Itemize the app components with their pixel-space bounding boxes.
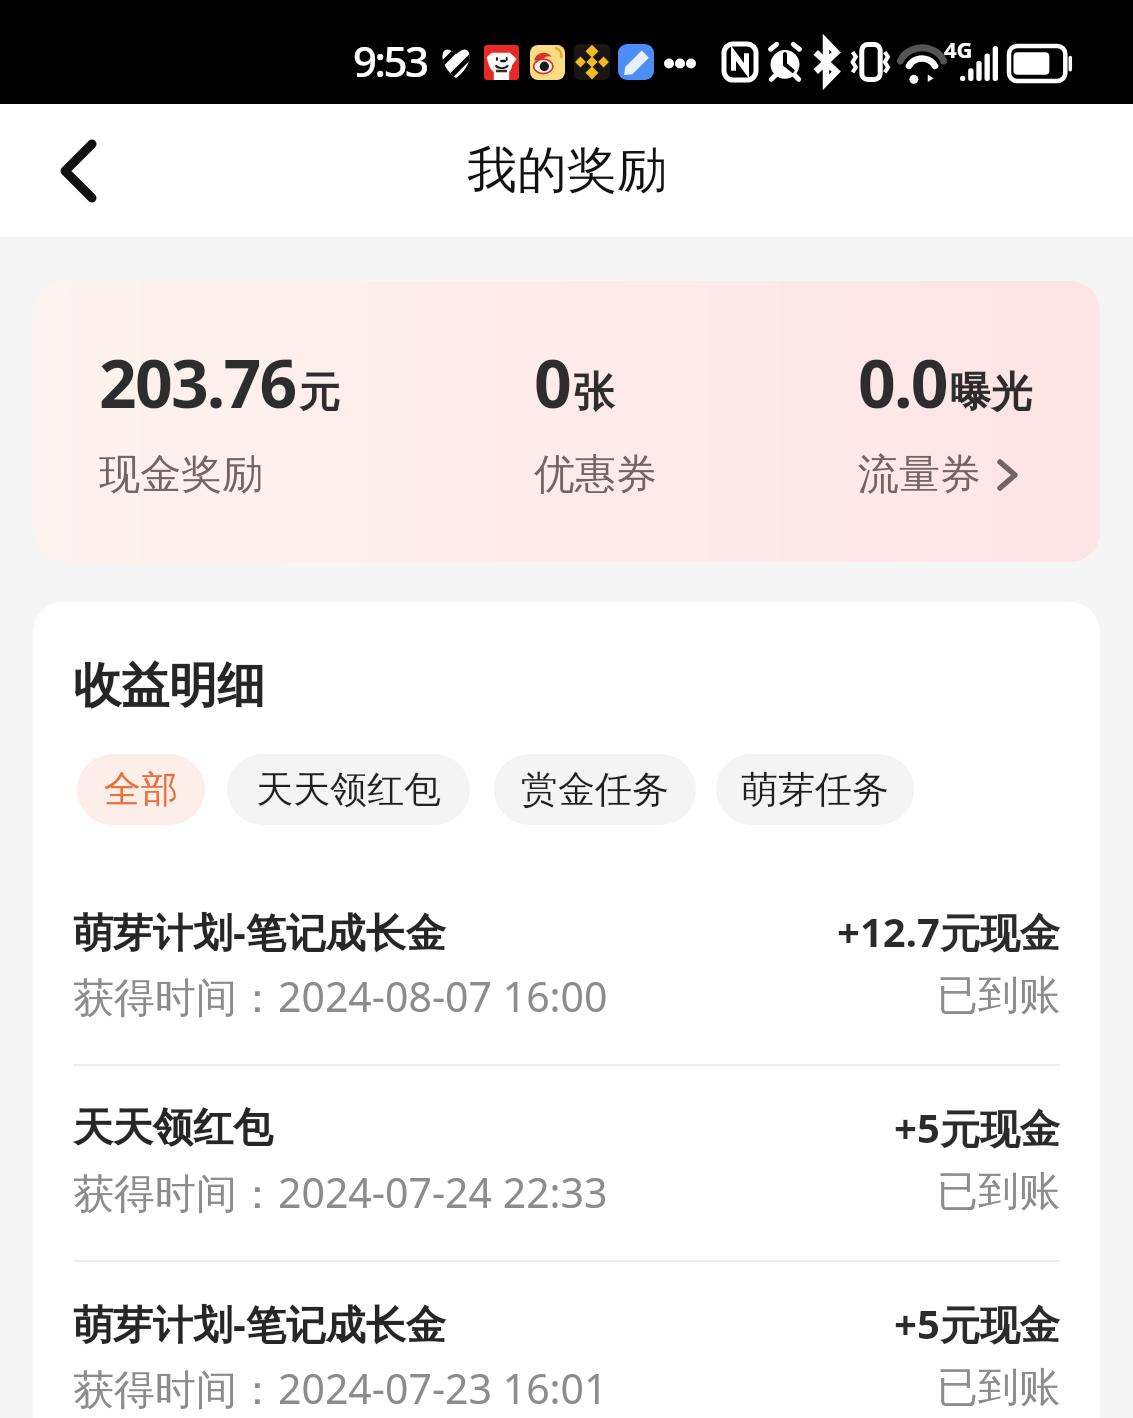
button[interactable]: 萌芽计划-笔记成长金 (33, 870, 1100, 1064)
staticText: 天天领红包 (256, 766, 441, 813)
button[interactable]: 203.76 (33, 281, 1100, 562)
staticText: 0 (534, 337, 570, 427)
staticText: +12.7元现金 (837, 904, 1060, 959)
staticText: +5元现金 (894, 1296, 1060, 1351)
staticText: 收益明细 (73, 656, 265, 716)
staticText: 我的奖励 (467, 139, 667, 202)
staticText: 全部 (104, 766, 178, 813)
staticText: 流量券 (858, 449, 981, 501)
staticText: 已到账 (937, 970, 1060, 1022)
staticText: 萌芽任务 (741, 766, 889, 813)
staticText: 赏金任务 (521, 766, 669, 813)
staticText: 曝光 (950, 367, 1032, 419)
staticText: 203.76 (99, 337, 296, 427)
button[interactable]: 天天领红包 (33, 1066, 1100, 1260)
button[interactable]: 天天领红包 (227, 754, 470, 825)
staticText: 萌芽计划-笔记成长金 (73, 1296, 894, 1351)
staticText: 天天领红包 (73, 1102, 894, 1152)
staticText: +5元现金 (894, 1100, 1060, 1155)
staticText: 优惠券 (534, 449, 657, 501)
staticText: 获得时间：2024-08-07 16:00 (73, 968, 937, 1024)
staticText: 已到账 (937, 1362, 1060, 1414)
staticText: 4G (944, 34, 973, 64)
staticText: 9:53 (353, 32, 427, 89)
staticText: 获得时间：2024-07-23 16:01 (73, 1360, 937, 1416)
button[interactable]: Back (44, 131, 124, 211)
staticText: 现金奖励 (99, 449, 263, 501)
button[interactable]: 萌芽计划-笔记成长金 (33, 1262, 1100, 1418)
staticText: 张 (573, 367, 614, 419)
staticText: 0.0 (858, 337, 947, 427)
button[interactable]: 赏金任务 (494, 754, 696, 825)
button[interactable]: 萌芽任务 (716, 754, 914, 825)
staticText: 已到账 (937, 1166, 1060, 1218)
staticText: 萌芽计划-笔记成长金 (73, 904, 837, 959)
staticText: 元 (299, 367, 340, 419)
staticText: 获得时间：2024-07-24 22:33 (73, 1164, 937, 1220)
button[interactable]: 全部 (77, 754, 205, 825)
